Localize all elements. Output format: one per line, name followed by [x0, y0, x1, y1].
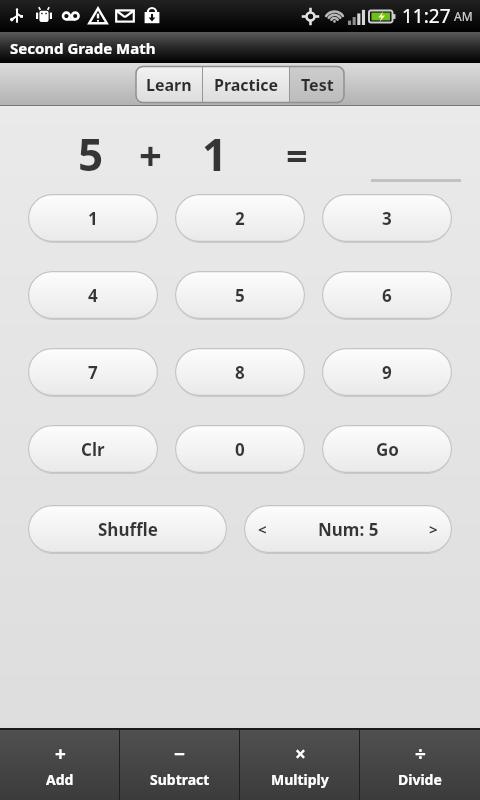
- staticText: Go: [376, 438, 399, 461]
- button[interactable]: 2: [175, 194, 305, 242]
- staticText: 2: [235, 207, 245, 230]
- staticText: ÷: [415, 741, 426, 767]
- button[interactable]: ÷: [360, 730, 480, 800]
- button[interactable]: 4: [28, 271, 158, 319]
- staticText: Add: [46, 770, 74, 789]
- staticText: >: [429, 519, 438, 539]
- staticText: =: [286, 129, 308, 181]
- button[interactable]: Go: [322, 425, 452, 473]
- staticText: 5: [235, 284, 245, 307]
- staticText: +: [139, 127, 162, 181]
- staticText: Test: [301, 74, 334, 96]
- button[interactable]: Test: [290, 67, 344, 103]
- staticText: Subtract: [150, 770, 210, 789]
- staticText: Shuffle: [98, 518, 158, 541]
- staticText: AM: [454, 8, 473, 24]
- button[interactable]: Clr: [28, 425, 158, 473]
- button[interactable]: 1: [28, 194, 158, 242]
- staticText: 5: [78, 124, 104, 184]
- staticText: 6: [382, 284, 392, 307]
- button[interactable]: −: [120, 730, 240, 800]
- button[interactable]: 9: [322, 348, 452, 396]
- staticText: Divide: [398, 770, 442, 789]
- button[interactable]: 5: [175, 271, 305, 319]
- staticText: 3: [382, 207, 392, 230]
- button[interactable]: 8: [175, 348, 305, 396]
- staticText: <: [258, 519, 267, 539]
- staticText: 9: [382, 361, 392, 384]
- button[interactable]: 3: [322, 194, 452, 242]
- staticText: Clr: [81, 438, 105, 461]
- staticText: Multiply: [271, 770, 329, 789]
- button[interactable]: ×: [240, 730, 360, 800]
- staticText: 1: [88, 207, 98, 230]
- staticText: Practice: [214, 74, 279, 96]
- staticText: +: [55, 741, 66, 767]
- button[interactable]: 7: [28, 348, 158, 396]
- staticText: Second Grade Math: [10, 38, 156, 58]
- staticText: ×: [295, 741, 306, 767]
- staticText: 7: [88, 361, 98, 384]
- staticText: 0: [235, 438, 245, 461]
- staticText: 11:27: [402, 3, 451, 29]
- button[interactable]: 0: [175, 425, 305, 473]
- staticText: 4: [88, 284, 98, 307]
- button[interactable]: Shuffle: [28, 505, 227, 553]
- staticText: 8: [235, 361, 245, 384]
- staticText: Num: 5: [318, 518, 379, 541]
- button[interactable]: Practice: [203, 67, 289, 103]
- staticText: Learn: [146, 74, 192, 96]
- staticText: 1: [202, 124, 228, 184]
- button[interactable]: Learn: [136, 67, 202, 103]
- button[interactable]: +: [0, 730, 120, 800]
- staticText: −: [174, 741, 186, 767]
- button[interactable]: 6: [322, 271, 452, 319]
- button[interactable]: <: [244, 505, 452, 553]
